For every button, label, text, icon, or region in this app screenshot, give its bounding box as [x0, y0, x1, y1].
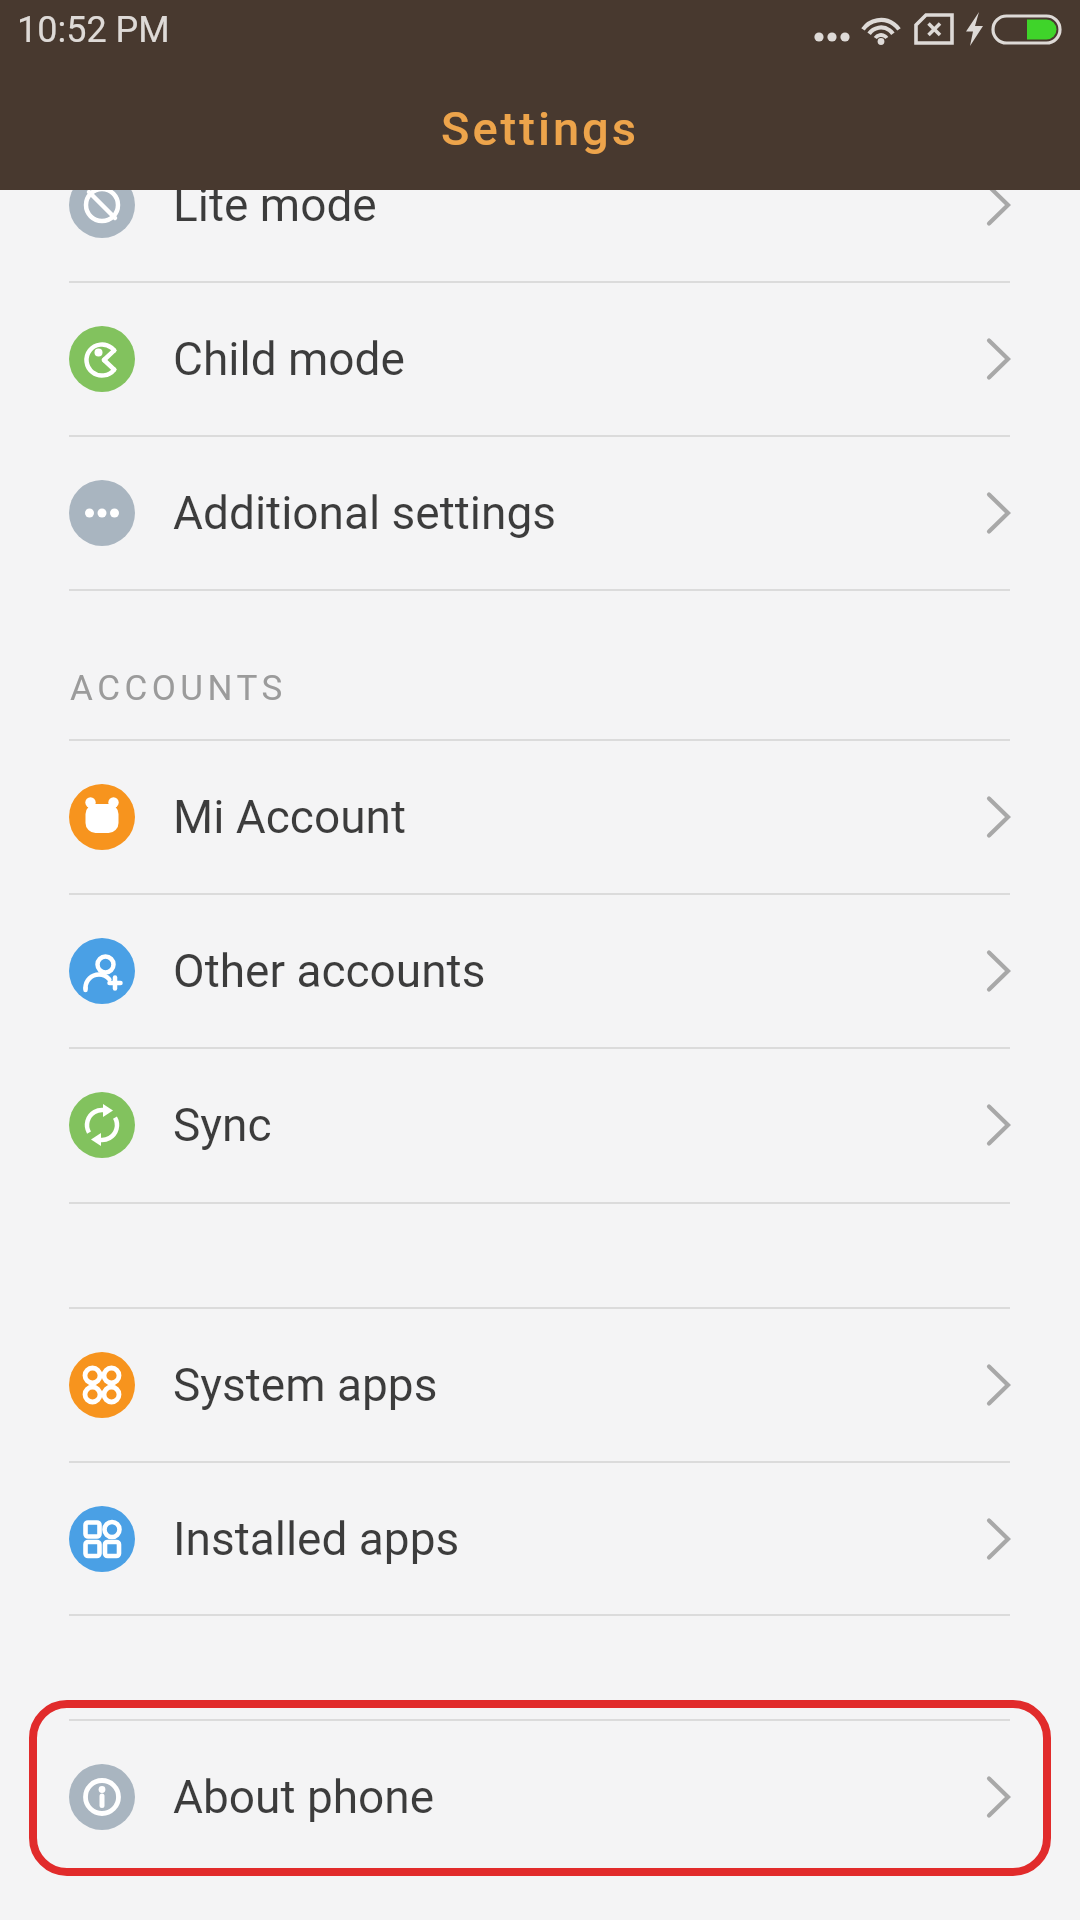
button[interactable]: Mi Account [0, 740, 1080, 894]
button[interactable]: Sync [0, 1048, 1080, 1202]
button[interactable]: System apps [0, 1308, 1080, 1462]
button[interactable]: Additional settings [0, 436, 1080, 590]
staticText: Installed apps [173, 1512, 460, 1566]
staticText: About phone [173, 1770, 435, 1824]
button[interactable]: Child mode [0, 282, 1080, 436]
staticText: Lite mode [173, 178, 377, 232]
staticText: Additional settings [173, 486, 556, 540]
button[interactable]: Lite mode [0, 128, 1080, 282]
staticText: Mi Account [173, 790, 406, 844]
button[interactable]: About phone [0, 1720, 1080, 1874]
staticText: Child mode [173, 332, 405, 386]
staticText: ACCOUNTS [70, 668, 287, 709]
staticText: Settings [0, 101, 1080, 156]
button[interactable]: Installed apps [0, 1462, 1080, 1616]
staticText: 10:52 PM [17, 9, 170, 51]
staticText: System apps [173, 1358, 438, 1412]
staticText: Sync [173, 1098, 272, 1152]
button[interactable]: Other accounts [0, 894, 1080, 1048]
staticText: Other accounts [173, 944, 486, 998]
